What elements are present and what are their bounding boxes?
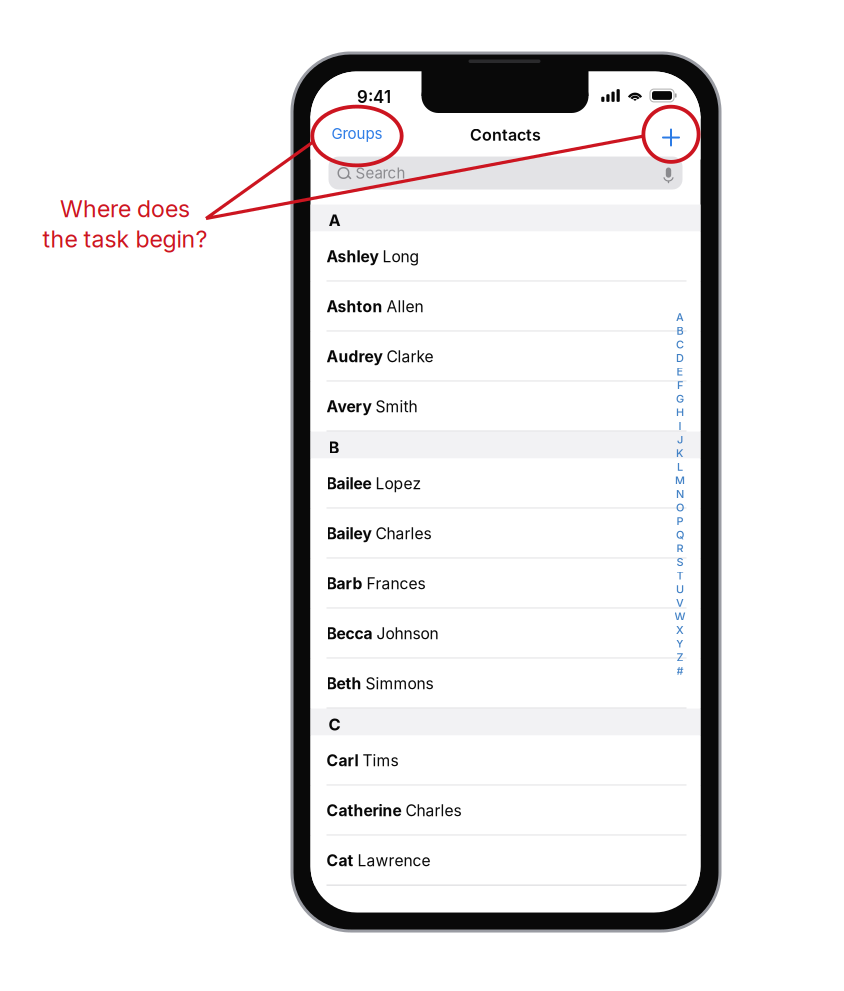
staticText: K — [676, 447, 684, 460]
staticText: Beth — [326, 674, 361, 693]
button[interactable]: Ashley — [310, 231, 700, 281]
staticText: G — [676, 392, 684, 405]
staticText: B — [676, 324, 683, 337]
button[interactable]: Add contact — [655, 121, 687, 153]
button[interactable]: Becca — [310, 608, 700, 658]
staticText: C — [676, 338, 684, 351]
staticText: Z — [676, 651, 683, 664]
staticText: Clarke — [382, 347, 433, 366]
button[interactable]: Ashton — [310, 281, 700, 331]
staticText: Carl — [326, 751, 358, 770]
button[interactable]: Avery — [310, 381, 700, 431]
staticText: # — [676, 664, 683, 677]
staticText: V — [676, 596, 684, 609]
staticText: X — [676, 623, 684, 637]
staticText: C — [328, 714, 340, 734]
staticText: Where does — [60, 195, 190, 223]
staticText: Search — [355, 164, 405, 182]
button[interactable]: Audrey — [310, 331, 700, 381]
staticText: Charles — [371, 524, 431, 543]
button[interactable]: Contacts — [445, 120, 565, 150]
staticText: Charles — [401, 801, 461, 820]
staticText: T — [676, 569, 683, 582]
button[interactable]: Bailey — [310, 508, 700, 558]
staticText: M — [675, 474, 685, 487]
staticText: Bailey — [326, 524, 371, 543]
staticText: A — [328, 210, 340, 230]
staticText: H — [676, 406, 684, 419]
staticText: F — [677, 379, 683, 392]
staticText: Smith — [371, 397, 417, 416]
staticText: Ashley — [326, 247, 378, 266]
button[interactable]: Groups — [324, 118, 390, 148]
staticText: 9:41 — [357, 87, 391, 107]
staticText: S — [676, 555, 683, 569]
staticText: Tims — [358, 751, 398, 770]
staticText: A — [676, 311, 684, 324]
staticText: Lawrence — [353, 851, 430, 870]
staticText: J — [677, 433, 683, 446]
staticText: Ashton — [326, 297, 382, 316]
staticText: I — [678, 419, 681, 433]
staticText: Lopez — [371, 474, 421, 493]
button[interactable]: Barb — [310, 558, 700, 608]
staticText: D — [676, 351, 684, 365]
staticText: Long — [378, 247, 419, 266]
staticText: Catherine — [326, 801, 401, 820]
staticText: Allen — [382, 297, 423, 316]
staticText: Bailee — [326, 474, 371, 493]
staticText: Contacts — [470, 125, 541, 145]
button[interactable]: Catherine — [310, 785, 700, 835]
staticText: Cat — [326, 851, 353, 870]
staticText: L — [677, 460, 683, 473]
staticText: R — [676, 542, 683, 555]
staticText: Barb — [326, 574, 362, 593]
staticText: Y — [676, 637, 684, 650]
staticText: B — [328, 437, 339, 457]
button[interactable]: Section index — [671, 310, 689, 677]
button[interactable]: Cat — [310, 835, 700, 885]
staticText: E — [676, 365, 683, 378]
staticText: Simmons — [361, 674, 433, 693]
staticText: P — [676, 515, 683, 528]
staticText: W — [674, 610, 685, 623]
staticText: U — [676, 583, 684, 596]
button[interactable]: Beth — [310, 658, 700, 708]
staticText: Groups — [331, 124, 382, 143]
staticText: Avery — [326, 397, 371, 416]
staticText: Audrey — [326, 347, 382, 366]
button[interactable]: Bailee — [310, 458, 700, 508]
staticText: Becca — [326, 624, 372, 643]
staticText: O — [676, 501, 684, 514]
staticText: Johnson — [372, 624, 438, 643]
staticText: N — [676, 487, 684, 501]
button[interactable]: Carl — [310, 735, 700, 785]
staticText: the task begin? — [42, 225, 207, 253]
button[interactable]: Search — [328, 156, 682, 189]
staticText: Q — [676, 528, 684, 541]
staticText: Frances — [362, 574, 425, 593]
